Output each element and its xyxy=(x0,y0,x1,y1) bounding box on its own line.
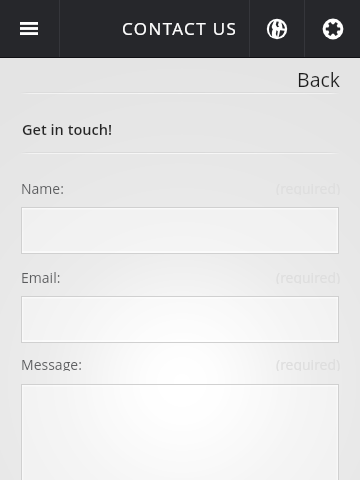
staticText: Name: xyxy=(21,179,64,195)
staticText: Get in touch! xyxy=(22,119,113,139)
button[interactable] xyxy=(21,384,339,480)
button[interactable]: Open navigation menu xyxy=(0,0,58,57)
staticText: (required) xyxy=(276,268,341,284)
staticText: Message: xyxy=(21,355,82,371)
staticText: CONTACT US xyxy=(122,17,238,40)
button[interactable]: Back xyxy=(297,66,340,93)
button[interactable]: Change language xyxy=(250,0,304,57)
button[interactable] xyxy=(21,207,339,254)
button[interactable]: Settings xyxy=(305,0,360,57)
staticText: (required) xyxy=(276,179,341,195)
button[interactable] xyxy=(21,296,339,343)
staticText: (required) xyxy=(276,355,341,371)
staticText: Email: xyxy=(21,268,61,284)
